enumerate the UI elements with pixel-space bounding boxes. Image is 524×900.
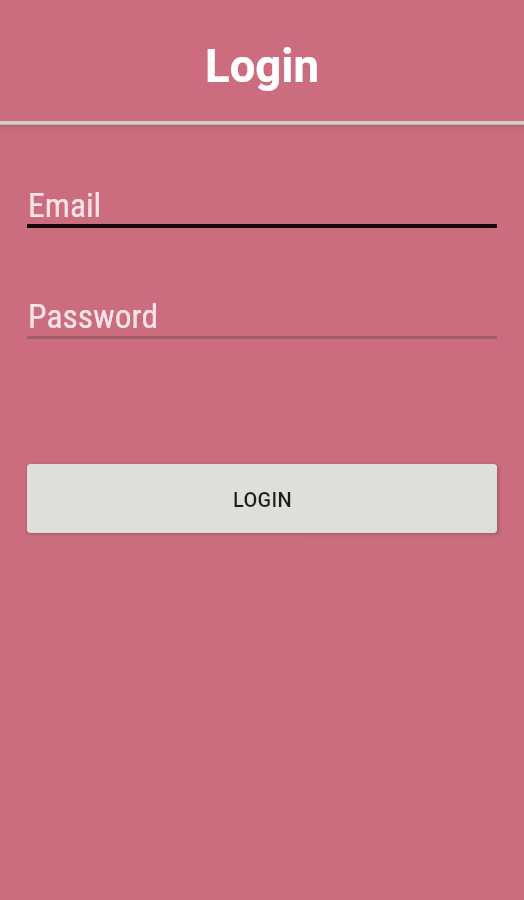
button[interactable]: LOGIN: [27, 464, 497, 533]
staticText: Email: [28, 186, 102, 225]
button[interactable]: Email: [27, 180, 497, 232]
staticText: Login: [205, 40, 319, 93]
button[interactable]: Password: [27, 290, 497, 342]
staticText: Password: [28, 297, 159, 336]
staticText: LOGIN: [233, 488, 292, 511]
